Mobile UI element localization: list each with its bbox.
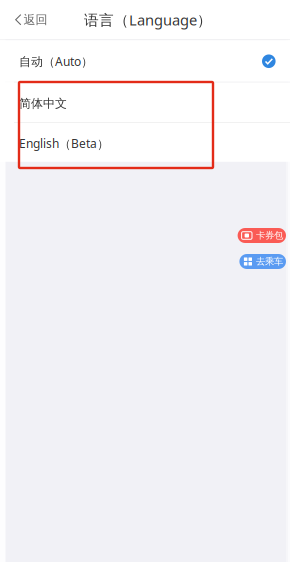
staticText: 去乘车 [256, 256, 283, 267]
button[interactable]: 返回 [0, 0, 59, 39]
staticText: 返回 [23, 12, 47, 27]
button[interactable]: English（Beta） [0, 123, 290, 162]
button[interactable]: 自动（Auto） [0, 40, 290, 82]
button[interactable]: 卡券包 [238, 228, 286, 243]
staticText: 卡券包 [256, 230, 283, 241]
staticText: 自动（Auto） [19, 53, 93, 69]
staticText: English（Beta） [19, 135, 109, 151]
button[interactable]: 去乘车 [239, 254, 286, 269]
staticText: 简体中文 [19, 96, 67, 111]
button[interactable]: 简体中文 [0, 83, 290, 122]
staticText: 语言（Language） [84, 10, 212, 29]
